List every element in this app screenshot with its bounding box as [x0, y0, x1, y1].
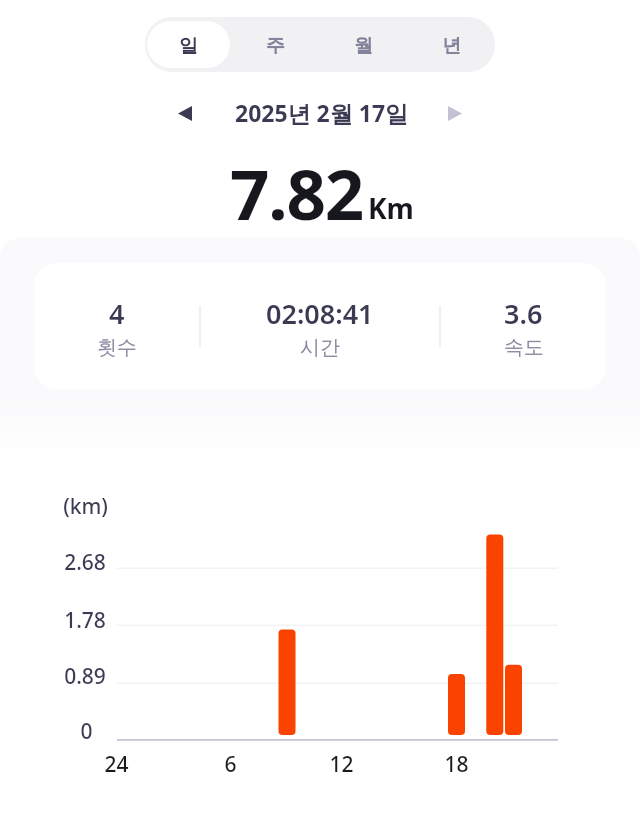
staticText: 0.89 [64, 662, 106, 691]
button[interactable]: 년 [409, 21, 493, 68]
button[interactable]: Previous day [165, 93, 205, 133]
staticText: 24 [104, 750, 129, 779]
staticText: 2025년 2월 17일 [235, 97, 409, 128]
staticText: 주 [266, 34, 285, 58]
staticText: (km) [63, 492, 108, 521]
staticText: 0 [80, 717, 93, 746]
button[interactable]: 월 [321, 21, 405, 68]
staticText: 시간 [300, 335, 340, 360]
staticText: 횟수 [97, 335, 137, 360]
staticText: 년 [442, 34, 461, 58]
staticText: 3.6 [504, 295, 543, 332]
staticText: 일 [179, 34, 198, 58]
button[interactable]: 주 [234, 21, 317, 68]
staticText: Km [368, 189, 414, 227]
staticText: 2.68 [64, 548, 106, 577]
staticText: 02:08:41 [266, 295, 374, 332]
button[interactable]: Next day [435, 93, 475, 133]
staticText: 4 [109, 295, 125, 332]
button[interactable]: 일 [147, 21, 230, 68]
staticText: 속도 [504, 335, 544, 360]
staticText: 18 [444, 750, 469, 779]
staticText: 12 [329, 750, 354, 779]
staticText: 6 [224, 750, 237, 779]
staticText: 1.78 [64, 606, 106, 635]
staticText: 7.82 [230, 146, 363, 240]
staticText: 월 [354, 34, 373, 58]
